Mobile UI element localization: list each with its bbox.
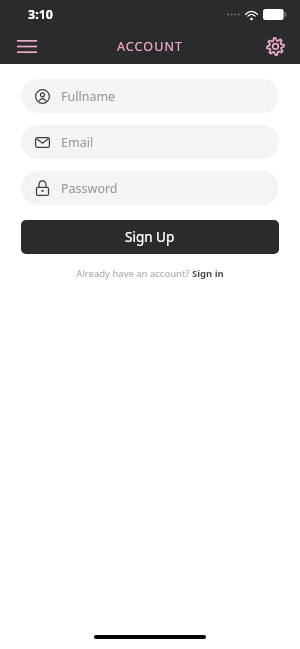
staticText: Fullname [61,88,116,105]
staticText: Password [61,180,118,197]
button[interactable]: Settings [261,32,289,60]
button[interactable]: Email [21,125,279,159]
staticText: 3:10 [28,6,53,23]
staticText: Sign Up [125,228,175,246]
button[interactable]: Open navigation menu [13,32,41,60]
staticText: Already have an account? Sign in [76,267,224,280]
button[interactable]: Sign Up [21,220,279,254]
button[interactable]: Password [21,171,279,205]
staticText: ACCOUNT [117,38,184,55]
button[interactable]: Fullname [21,79,279,113]
staticText: Email [61,134,94,151]
button[interactable]: Already have an account? Sign in [0,267,300,280]
